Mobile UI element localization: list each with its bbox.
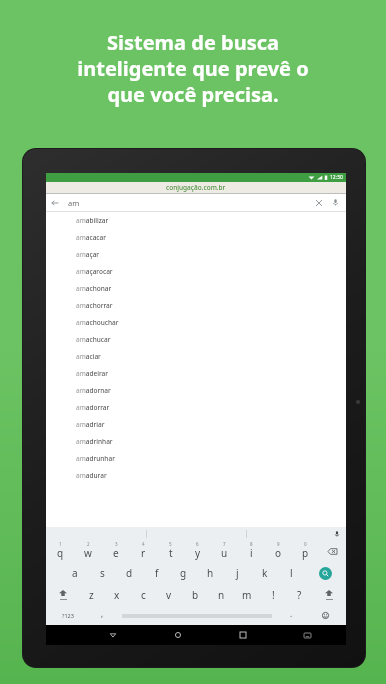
button[interactable]: z (79, 584, 104, 606)
staticText: q (57, 546, 64, 560)
staticText: ! (272, 588, 275, 602)
button[interactable]: Search (305, 562, 346, 584)
button[interactable]: amabilizar (46, 212, 346, 229)
button[interactable]: 3 (102, 540, 130, 562)
button[interactable]: amachucar (46, 331, 346, 348)
button[interactable]: amachonar (46, 280, 346, 297)
staticText: amachouchar (76, 318, 119, 327)
button[interactable]: amachorrar (46, 297, 346, 314)
button[interactable]: b (182, 584, 208, 606)
button[interactable]: amadrunhar (46, 450, 346, 467)
button[interactable]: amadrinhar (46, 433, 346, 450)
staticText: g (180, 566, 187, 580)
button[interactable]: v (156, 584, 182, 606)
staticText: 5 (169, 541, 172, 547)
button[interactable]: s (89, 562, 116, 584)
button[interactable]: Home (145, 625, 210, 645)
button[interactable]: Recents (210, 625, 275, 645)
button[interactable]: h (197, 562, 224, 584)
staticText: t (169, 546, 173, 560)
button[interactable]: conjugação.com.br (46, 182, 346, 193)
staticText: 6 (196, 541, 199, 547)
button[interactable]: amadeirar (46, 365, 346, 382)
button[interactable] (247, 527, 346, 540)
button[interactable]: g (170, 562, 197, 584)
staticText: amachonar (76, 284, 112, 293)
button[interactable]: a (61, 562, 89, 584)
button[interactable]: amadorrar (46, 399, 346, 416)
staticText: amaçar (76, 250, 100, 259)
button[interactable]: ? (286, 584, 312, 606)
button[interactable]: c (130, 584, 156, 606)
button[interactable]: Clear (310, 194, 327, 211)
button[interactable]: . (278, 606, 304, 625)
button[interactable]: Backspace (319, 540, 346, 562)
button[interactable]: 4 (130, 540, 157, 562)
button[interactable]: Back (46, 194, 63, 211)
button[interactable]: x (104, 584, 130, 606)
button[interactable]: Shift (46, 584, 79, 606)
staticText: amaçarocar (76, 267, 113, 276)
button[interactable]: amadurar (46, 467, 346, 484)
button[interactable]: Emoji (304, 606, 346, 625)
button[interactable]: Voice search (327, 194, 344, 211)
button[interactable]: Shift (312, 584, 346, 606)
staticText: h (207, 566, 214, 580)
button[interactable]: k (251, 562, 278, 584)
staticText: l (290, 566, 293, 580)
staticText: r (141, 546, 146, 560)
staticText: amadrinhar (76, 437, 113, 446)
staticText: 8 (250, 541, 253, 547)
button[interactable]: d (116, 562, 143, 584)
staticText: amacacar (76, 233, 107, 242)
button[interactable]: j (224, 562, 251, 584)
staticText: m (242, 588, 252, 602)
staticText: o (275, 546, 282, 560)
staticText: w (84, 546, 92, 560)
button[interactable]: 7 (211, 540, 238, 562)
staticText: . (290, 608, 293, 619)
staticText: , (101, 608, 104, 619)
button[interactable]: f (143, 562, 170, 584)
button[interactable]: amaciar (46, 348, 346, 365)
button[interactable]: ?123 (46, 606, 89, 625)
button[interactable]: 9 (265, 540, 292, 562)
staticText: x (114, 588, 120, 602)
button[interactable]: 1 (46, 540, 74, 562)
button[interactable]: amaçarocar (46, 263, 346, 280)
staticText: amadornar (76, 386, 111, 395)
staticText: 0 (304, 541, 307, 547)
staticText: n (218, 588, 225, 602)
button[interactable]: Keyboard (275, 625, 340, 645)
staticText: amadrunhar (76, 454, 115, 463)
button[interactable]: 2 (74, 540, 102, 562)
button[interactable]: amachouchar (46, 314, 346, 331)
button[interactable]: amacacar (46, 229, 346, 246)
button[interactable]: m (234, 584, 260, 606)
staticText: 1 (59, 541, 62, 547)
button[interactable]: 0 (292, 540, 319, 562)
button[interactable]: amadornar (46, 382, 346, 399)
button[interactable]: , (89, 606, 115, 625)
staticText: amachorrar (76, 301, 113, 310)
staticText: y (195, 546, 201, 560)
button[interactable]: n (208, 584, 234, 606)
staticText: e (113, 546, 119, 560)
button[interactable]: Back (80, 625, 145, 645)
button[interactable]: 8 (238, 540, 265, 562)
button[interactable]: amadriar (46, 416, 346, 433)
staticText: amadeirar (76, 369, 109, 378)
staticText: b (192, 588, 199, 602)
button[interactable]: l (278, 562, 305, 584)
button[interactable]: Space (115, 606, 278, 625)
button[interactable]: 5 (157, 540, 184, 562)
button[interactable]: 6 (184, 540, 211, 562)
staticText: amachucar (76, 335, 111, 344)
button[interactable]: ! (260, 584, 286, 606)
button[interactable]: Voice input (332, 529, 341, 538)
staticText: amadriar (76, 420, 105, 429)
staticText: f (155, 566, 159, 580)
button[interactable]: amaçar (46, 246, 346, 263)
